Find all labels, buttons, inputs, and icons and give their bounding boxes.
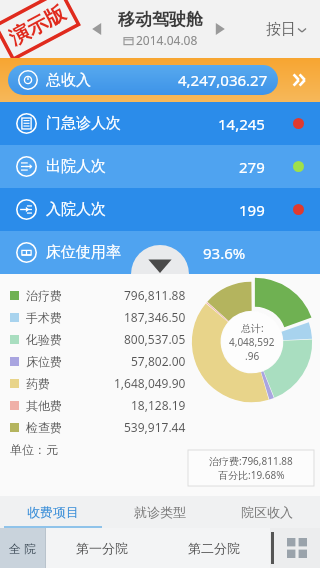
button[interactable]: 床位使用率 xyxy=(0,231,320,274)
staticText: 收费项目 xyxy=(27,504,79,520)
button[interactable]: 总收入 xyxy=(0,58,320,102)
button[interactable]: 入院人次 xyxy=(0,188,320,231)
staticText: 第一分院 xyxy=(76,540,128,556)
staticText: 57,802.00 xyxy=(131,353,186,369)
staticText: 1,648,049.90 xyxy=(114,375,186,391)
staticText: 床位使用率 xyxy=(46,243,121,262)
staticText: 187,346.50 xyxy=(124,309,186,325)
staticText: 800,537.05 xyxy=(124,331,186,347)
button[interactable]: 院区收入 xyxy=(213,496,320,528)
staticText: 演示版 xyxy=(5,0,70,50)
staticText: 539,917.44 xyxy=(124,419,186,435)
button[interactable]: Previous xyxy=(82,14,112,44)
staticText: 4,048,592 xyxy=(229,335,275,349)
button[interactable]: 出院人次 xyxy=(0,145,320,188)
staticText: 第二分院 xyxy=(188,540,240,556)
staticText: 2014.04.08 xyxy=(136,32,198,48)
staticText: 治疗费:796,811.88 xyxy=(209,454,293,468)
button[interactable]: 门急诊人次 xyxy=(0,102,320,145)
staticText: .96 xyxy=(245,349,260,363)
staticText: 全 院 xyxy=(9,540,37,556)
staticText: 药费 xyxy=(26,376,50,391)
staticText: 199 xyxy=(239,200,265,220)
button[interactable]: 收费项目 xyxy=(0,496,106,528)
button[interactable]: 第一分院 xyxy=(46,528,158,568)
staticText: 床位费 xyxy=(26,354,62,369)
staticText: 百分比:19.68% xyxy=(218,468,285,482)
staticText: 279 xyxy=(239,157,265,177)
button[interactable]: 第二分院 xyxy=(158,528,270,568)
staticText: 就诊类型 xyxy=(134,504,186,520)
staticText: 总收入 xyxy=(46,71,91,90)
button[interactable]: Expand xyxy=(131,245,189,274)
staticText: 单位：元 xyxy=(10,442,58,457)
staticText: 出院人次 xyxy=(46,157,106,176)
staticText: 移动驾驶舱 xyxy=(118,9,203,30)
button[interactable]: 就诊类型 xyxy=(106,496,213,528)
staticText: 14,245 xyxy=(218,114,265,134)
staticText: 其他费 xyxy=(26,398,62,413)
staticText: 治疗费 xyxy=(26,288,62,303)
staticText: 检查费 xyxy=(26,420,62,435)
button[interactable]: 全 院 xyxy=(0,528,45,568)
staticText: 门急诊人次 xyxy=(46,114,121,133)
button[interactable]: Grid view xyxy=(274,528,320,568)
staticText: 按日 xyxy=(266,20,296,39)
staticText: 院区收入 xyxy=(241,504,293,520)
staticText: 总计: xyxy=(241,321,264,335)
button[interactable]: Next xyxy=(205,14,235,44)
staticText: 796,811.88 xyxy=(124,287,186,303)
staticText: 手术费 xyxy=(26,310,62,325)
staticText: 4,247,036.27 xyxy=(178,70,268,90)
staticText: 化验费 xyxy=(26,332,62,347)
staticText: 入院人次 xyxy=(46,200,106,219)
staticText: 93.6% xyxy=(203,243,246,263)
staticText: 18,128.19 xyxy=(131,397,186,413)
button[interactable]: 按日 xyxy=(266,20,306,39)
